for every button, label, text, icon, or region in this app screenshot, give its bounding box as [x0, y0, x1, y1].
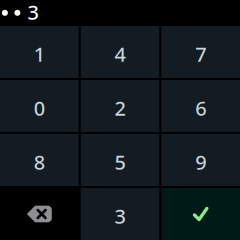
staticText: 7: [195, 41, 206, 67]
button[interactable]: 0: [0, 80, 79, 132]
staticText: 8: [34, 149, 45, 175]
button[interactable]: 3: [81, 188, 159, 240]
button[interactable]: 1: [0, 26, 79, 78]
button[interactable]: 5: [81, 134, 159, 186]
staticText: 1: [34, 41, 45, 67]
button[interactable]: 2: [81, 80, 159, 132]
button[interactable]: 6: [161, 80, 240, 132]
button[interactable]: 8: [0, 134, 79, 186]
staticText: 3: [114, 203, 125, 229]
staticText: 2: [114, 95, 125, 121]
staticText: 4: [114, 41, 125, 67]
button[interactable]: 9: [161, 134, 240, 186]
staticText: 3: [28, 0, 39, 25]
staticText: 5: [114, 149, 125, 175]
staticText: 0: [34, 95, 45, 121]
button[interactable]: 7: [161, 26, 240, 78]
staticText: 9: [195, 149, 206, 175]
button[interactable]: 4: [81, 26, 159, 78]
button[interactable]: Delete: [0, 188, 79, 240]
staticText: 6: [195, 95, 206, 121]
button[interactable]: Enter: [161, 188, 240, 240]
